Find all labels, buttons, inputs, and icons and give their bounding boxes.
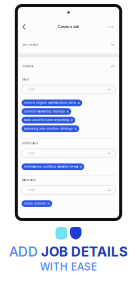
staticText: Select <box>28 88 35 91</box>
button[interactable]: Content Marketing Strategy <box>22 108 71 115</box>
staticText: Select <box>28 189 35 192</box>
button[interactable]: Criteria <box>18 57 119 75</box>
staticText: Data Analytics and Reporting <box>24 118 69 122</box>
button[interactable]: Branding and Creative Strategy <box>22 125 79 132</box>
staticText: JOB DETAILS <box>41 243 128 260</box>
staticText: Criteria <box>23 65 33 68</box>
staticText: Create a Job <box>58 25 79 29</box>
button[interactable]: Select <box>22 186 115 194</box>
staticText: Skills <box>22 78 29 81</box>
button[interactable]: Professional Certified Marketer (PCM) <box>22 163 84 170</box>
button[interactable]: Search Engine Optimization (SEO) <box>22 99 82 106</box>
button[interactable]: Select <box>22 85 115 94</box>
staticText: Select <box>28 152 35 155</box>
button[interactable]: Select <box>22 149 115 158</box>
staticText: Content Marketing Strategy <box>24 110 65 113</box>
staticText: Certificates <box>22 142 38 145</box>
staticText: WITH EASE <box>40 261 97 273</box>
staticText: ADD <box>9 243 38 260</box>
staticText: Professional Certified Marketer (PCM) <box>24 165 78 168</box>
button[interactable]: Clear <box>107 22 114 32</box>
staticText: Search Engine Optimization (SEO) <box>24 101 76 104</box>
button[interactable]: Saudi Arabian <box>22 200 52 207</box>
staticText: Job Details <box>23 43 38 46</box>
button[interactable]: Data Analytics and Reporting <box>22 117 75 123</box>
staticText: Clear <box>107 25 114 28</box>
staticText: Branding and Creative Strategy <box>24 127 73 130</box>
button[interactable]: Back <box>23 22 30 32</box>
staticText: Nationality <box>22 179 36 182</box>
button[interactable]: Job Details <box>18 35 119 54</box>
staticText: Saudi Arabian <box>24 202 46 205</box>
